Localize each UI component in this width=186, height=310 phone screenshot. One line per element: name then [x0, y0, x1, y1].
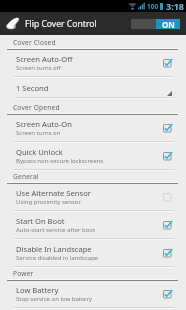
staticText: Use Alternate Sensor — [16, 188, 91, 198]
button[interactable]: Use Alternate Sensor — [0, 184, 186, 212]
staticText: Screen turns off — [16, 64, 61, 72]
staticText: Stop service on low battery — [16, 295, 93, 303]
staticText: Disable In Landscape — [16, 244, 92, 254]
button[interactable]: Screen Auto-On — [0, 115, 186, 143]
button[interactable]: Enable Flip Cover Control — [131, 19, 180, 29]
staticText: Start On Boot — [16, 216, 65, 226]
staticText: Screen Auto-Off — [16, 54, 73, 64]
staticText: Screen turns on — [16, 129, 61, 137]
button[interactable]: Disable In Landscape — [0, 240, 186, 268]
button[interactable]: App icon — [0, 12, 186, 35]
other: App icon — [6, 17, 20, 30]
staticText: Cover Closed — [13, 38, 56, 47]
staticText: 3:18 — [166, 0, 184, 12]
staticText: Flip Cover Control — [25, 18, 97, 30]
staticText: 100 — [147, 2, 159, 11]
button[interactable]: 1 Second — [0, 78, 186, 99]
other: Open dropdown — [167, 91, 172, 96]
staticText: ON — [162, 19, 175, 29]
staticText: 1 Second — [16, 83, 49, 93]
staticText: Using proximity sensor — [16, 198, 81, 206]
staticText: Cover Opened — [13, 103, 60, 112]
staticText: Power — [13, 269, 34, 278]
button[interactable]: Low Battery — [0, 281, 186, 309]
staticText: Screen Auto-On — [16, 119, 72, 129]
staticText: General — [13, 172, 39, 181]
staticText: Quick Unlock — [16, 147, 63, 157]
button[interactable]: Start On Boot — [0, 212, 186, 240]
button[interactable]: Screen Auto-Off — [0, 50, 186, 78]
staticText: Service disabled in landscape — [16, 254, 99, 262]
staticText: Auto-start service after boot — [16, 226, 96, 234]
staticText: Low Battery — [16, 285, 59, 295]
button[interactable]: Quick Unlock — [0, 143, 186, 171]
staticText: Bypass non-secure lockscreens — [16, 157, 104, 165]
